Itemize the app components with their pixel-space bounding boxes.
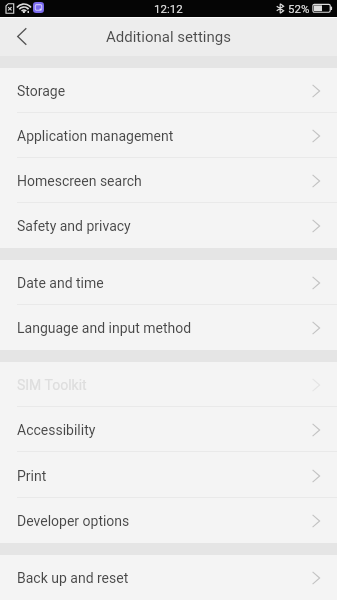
button[interactable]: Homescreen search [0, 158, 337, 203]
staticText: Additional settings [106, 28, 231, 46]
button[interactable]: Safety and privacy [0, 203, 337, 248]
staticText: Language and input method [17, 320, 192, 336]
button[interactable]: Application management [0, 113, 337, 158]
staticText: Homescreen search [17, 173, 142, 189]
staticText: Storage [17, 83, 66, 99]
button[interactable]: Developer options [0, 498, 337, 543]
staticText: 52% [288, 2, 310, 15]
staticText: SIM Toolkit [17, 377, 87, 393]
button[interactable]: Print [0, 453, 337, 498]
staticText: Application management [17, 128, 174, 144]
button[interactable]: Storage [0, 68, 337, 113]
staticText: Accessibility [17, 422, 96, 438]
staticText: Developer options [17, 513, 130, 529]
button[interactable]: Back [0, 18, 44, 56]
button[interactable]: Accessibility [0, 407, 337, 452]
staticText: Safety and privacy [17, 218, 131, 234]
staticText: 12:12 [154, 2, 183, 15]
button[interactable]: Date and time [0, 260, 337, 305]
button[interactable]: SIM Toolkit [0, 362, 337, 407]
button[interactable]: Language and input method [0, 305, 337, 350]
staticText: Back up and reset [17, 570, 129, 586]
button[interactable]: Back up and reset [0, 555, 337, 600]
staticText: Date and time [17, 275, 104, 291]
staticText: Print [17, 468, 47, 484]
